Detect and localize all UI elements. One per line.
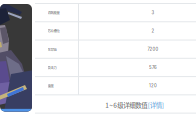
button[interactable]: 1~6级详细数值 [35,96,196,114]
staticText: 攻击力 [47,65,56,70]
staticText: 2 [151,28,154,33]
staticText: 芯片槽位 [47,28,59,33]
staticText: 7200 [147,47,158,52]
staticText: [详情] [148,100,164,110]
staticText: 576 [149,65,157,70]
staticText: 3 [151,10,154,15]
staticText: 消耗能量 [47,10,59,15]
staticText: 120 [149,83,157,88]
staticText: 生命值 [47,47,56,52]
staticText: 速度 [47,83,53,88]
staticText: 1~6级详细数值 [105,100,147,110]
